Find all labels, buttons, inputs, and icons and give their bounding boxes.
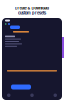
staticText: Create & Download <box>14 6 49 10</box>
staticText: custom presets <box>18 10 46 15</box>
